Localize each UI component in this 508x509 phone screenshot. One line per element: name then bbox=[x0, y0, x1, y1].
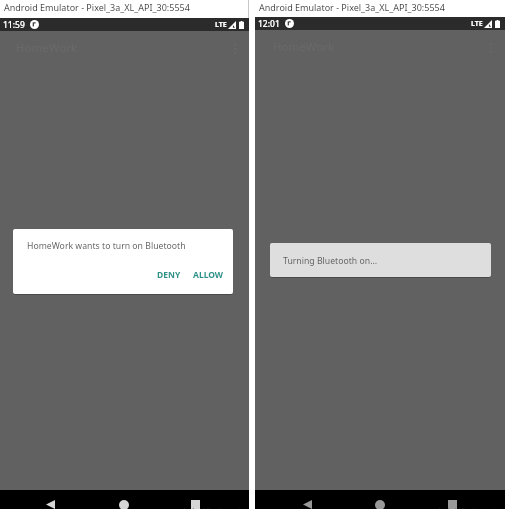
button[interactable]: Recents bbox=[191, 500, 200, 509]
button[interactable]: ALLOW bbox=[191, 267, 226, 283]
staticText: Android Emulator - Pixel_3a_XL_API_30:55… bbox=[259, 1, 445, 13]
staticText: LTE bbox=[471, 19, 483, 29]
staticText: 12:01 bbox=[258, 18, 280, 30]
staticText: ALLOW bbox=[193, 269, 224, 281]
button[interactable]: Home bbox=[375, 500, 385, 509]
staticText: an Android Studio emulator bbox=[174, 506, 253, 509]
button[interactable]: DENY bbox=[155, 267, 183, 283]
staticText: Android Emulator - Pixel_3a_XL_API_30:55… bbox=[4, 1, 190, 13]
button[interactable]: Back bbox=[46, 500, 55, 509]
staticText: HomeWork wants to turn on Bluetooth bbox=[27, 240, 186, 252]
staticText: 11:59 bbox=[3, 19, 25, 31]
staticText: Turning Bluetooth on… bbox=[283, 255, 377, 267]
button[interactable]: Back bbox=[303, 500, 312, 509]
staticText: LTE bbox=[215, 20, 227, 30]
button[interactable]: Recents bbox=[448, 500, 457, 509]
staticText: DENY bbox=[157, 269, 181, 281]
staticText: an Android Studio emulator bbox=[429, 506, 508, 509]
button[interactable]: Home bbox=[119, 500, 129, 509]
